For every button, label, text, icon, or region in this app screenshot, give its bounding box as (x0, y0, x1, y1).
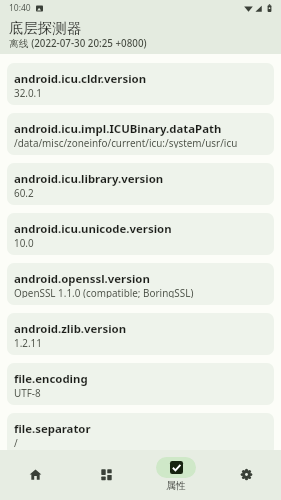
staticText: 32.0.1 (14, 86, 42, 98)
staticText: android.icu.cldr.version (14, 71, 147, 87)
staticText: file.separator (14, 421, 91, 437)
staticText: 10.0 (14, 236, 34, 248)
button[interactable]: Settings (211, 450, 281, 500)
button[interactable]: Home (0, 450, 71, 500)
button[interactable]: file.separator (7, 413, 274, 450)
staticText: / (14, 436, 18, 448)
button[interactable]: file.encoding (7, 363, 274, 405)
button[interactable]: Dashboard (71, 450, 141, 500)
staticText: android.icu.library.version (14, 171, 164, 187)
staticText: 底层探测器 (9, 19, 82, 37)
button[interactable]: android.icu.impl.ICUBinary.dataPath (7, 113, 274, 155)
button[interactable]: android.zlib.version (7, 313, 274, 355)
button[interactable]: android.icu.library.version (7, 163, 274, 205)
staticText: android.icu.impl.ICUBinary.dataPath (14, 121, 222, 137)
staticText: /data/misc/zoneinfo/current/icu:/system/… (14, 136, 238, 148)
staticText: android.icu.unicode.version (14, 221, 172, 237)
staticText: 1.2.11 (14, 336, 42, 348)
button[interactable]: android.openssl.version (7, 263, 274, 305)
staticText: UTF-8 (14, 386, 41, 398)
staticText: file.encoding (14, 371, 88, 387)
button[interactable]: Properties (141, 450, 211, 500)
staticText: android.openssl.version (14, 271, 150, 287)
staticText: OpenSSL 1.1.0 (compatible; BoringSSL) (14, 286, 194, 298)
staticText: 60.2 (14, 186, 34, 198)
staticText: 离线 (2022-07-30 20:25 +0800) (9, 37, 147, 50)
button[interactable]: android.icu.cldr.version (7, 63, 274, 105)
staticText: 属性 (166, 480, 186, 492)
button[interactable]: android.icu.unicode.version (7, 213, 274, 255)
staticText: 10:40 (9, 2, 31, 14)
staticText: android.zlib.version (14, 321, 127, 337)
